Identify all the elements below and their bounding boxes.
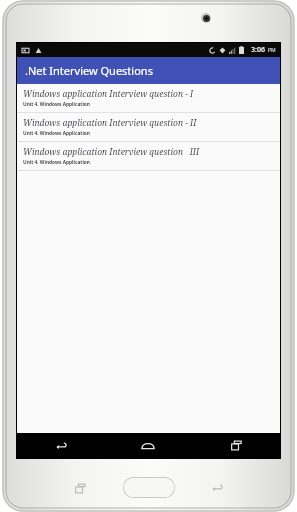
button[interactable]: Windows application Interview question -… (17, 84, 280, 112)
staticText: Unit 4. Windows Application (23, 130, 90, 137)
button[interactable]: Home (104, 433, 192, 458)
button[interactable]: Recent apps (192, 433, 280, 458)
staticText: 3:06 (251, 45, 265, 55)
button[interactable]: Recent apps key (72, 480, 88, 496)
button[interactable]: Windows application Interview question I… (17, 142, 280, 170)
staticText: PM (268, 47, 276, 54)
button[interactable]: Windows application Interview question -… (17, 113, 280, 141)
staticText: Windows application Interview question -… (23, 88, 194, 100)
staticText: .Net Interview Questions (25, 63, 153, 78)
staticText: Unit 4. Windows Application (23, 159, 90, 166)
button[interactable]: Back (17, 433, 104, 458)
staticText: Windows application Interview question -… (23, 117, 197, 129)
button[interactable]: .Net Interview Questions (17, 57, 280, 84)
button[interactable]: Back key (209, 480, 225, 496)
button[interactable]: Home key (123, 477, 175, 498)
staticText: Windows application Interview question I… (23, 146, 200, 158)
staticText: Unit 4. Windows Application (23, 101, 90, 108)
